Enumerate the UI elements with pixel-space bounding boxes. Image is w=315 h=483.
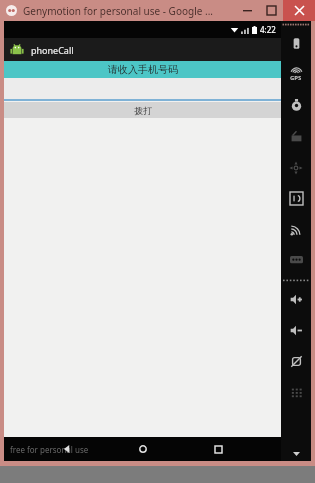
button[interactable]: Minimize — [235, 0, 259, 21]
button[interactable] — [4, 78, 281, 101]
button[interactable]: Back — [54, 437, 80, 461]
button[interactable]: Identifiers — [281, 183, 311, 214]
button[interactable]: Camera — [281, 90, 311, 121]
staticText: Genymotion for personal use - Google ... — [23, 4, 213, 18]
button[interactable]: D-pad — [281, 152, 311, 183]
button[interactable]: 拨打 — [4, 102, 281, 118]
button[interactable]: Keyboard — [281, 377, 311, 408]
button[interactable]: Display — [281, 121, 311, 152]
button[interactable]: GPS — [281, 59, 311, 90]
staticText: phoneCall — [31, 44, 74, 56]
staticText: 请收入手机号码 — [108, 63, 178, 76]
button[interactable]: Rotate — [281, 346, 311, 377]
button[interactable]: Maximize — [259, 0, 283, 21]
button[interactable]: Recent apps — [205, 437, 231, 461]
button[interactable]: Battery — [281, 28, 311, 59]
button[interactable]: Home — [130, 437, 156, 461]
button[interactable]: Volume up — [281, 284, 311, 315]
button[interactable]: SMS — [281, 245, 311, 276]
button[interactable]: 请收入手机号码 — [4, 61, 281, 78]
staticText: GPS — [290, 74, 302, 82]
button[interactable]: Volume down — [281, 315, 311, 346]
button[interactable]: Network — [281, 214, 311, 245]
staticText: 4:22 — [260, 24, 276, 35]
staticText: free for personal use — [10, 444, 89, 455]
button[interactable]: More — [281, 447, 311, 461]
button[interactable]: Close — [283, 0, 315, 21]
staticText: 拨打 — [134, 105, 152, 116]
